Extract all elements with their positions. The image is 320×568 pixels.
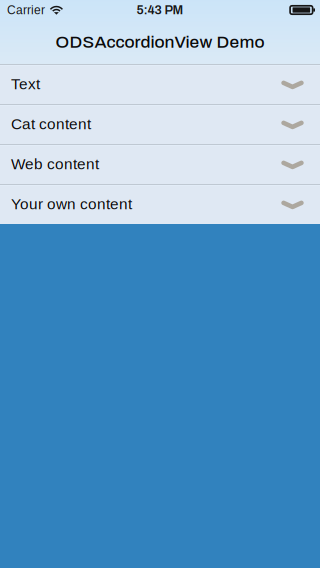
button[interactable]: Your own content <box>0 184 320 224</box>
staticText: Cat content <box>11 115 91 132</box>
staticText: Your own content <box>11 195 132 212</box>
staticText: Web content <box>11 155 99 172</box>
staticText: ODSAccordionView Demo <box>55 33 264 51</box>
button[interactable]: Cat content <box>0 104 320 144</box>
button[interactable]: Web content <box>0 144 320 184</box>
staticText: Carrier <box>7 3 45 17</box>
staticText: Text <box>11 75 40 92</box>
staticText: 5:43 PM <box>136 3 183 17</box>
button[interactable]: Text <box>0 64 320 104</box>
